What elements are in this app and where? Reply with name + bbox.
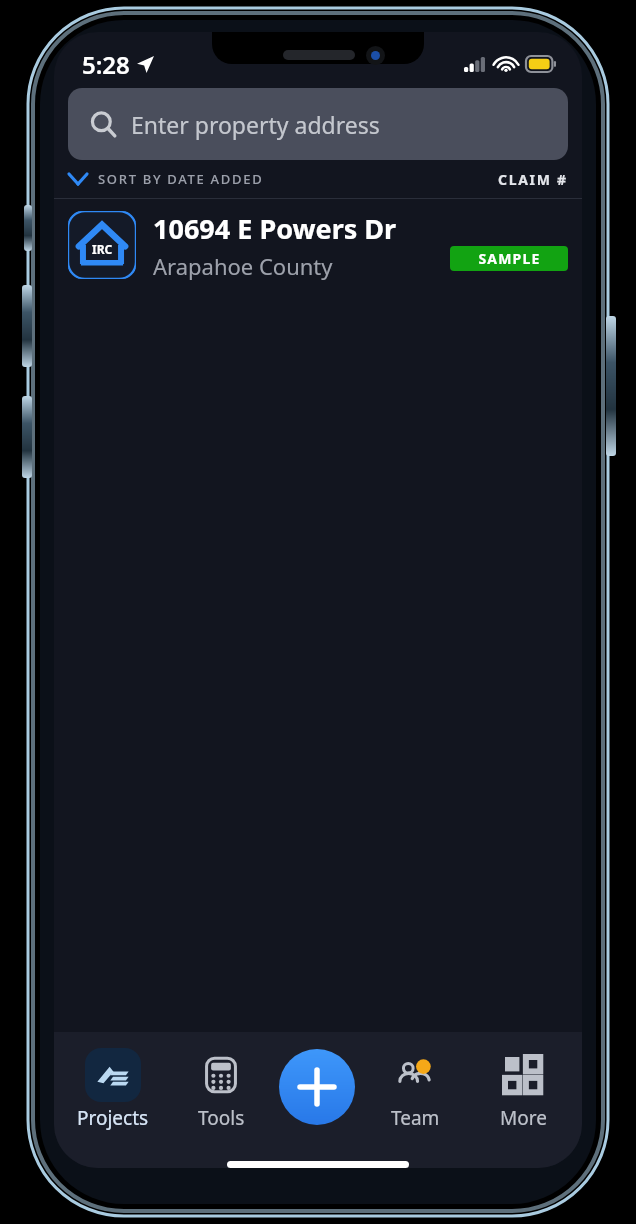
button[interactable]: Team xyxy=(367,1044,463,1135)
staticText: Projects xyxy=(77,1105,149,1131)
staticText: SORT BY DATE ADDED xyxy=(98,170,264,188)
button[interactable]: CLAIM # xyxy=(498,170,568,189)
staticText: Team xyxy=(391,1105,440,1131)
staticText: 10694 E Powers Dr xyxy=(153,210,397,247)
staticText: More xyxy=(500,1105,547,1131)
button[interactable]: Enter property address xyxy=(68,88,568,160)
button[interactable]: SORT BY DATE ADDED xyxy=(68,170,272,188)
staticText: Arapahoe County xyxy=(153,251,333,281)
button[interactable]: Tools xyxy=(173,1044,269,1135)
staticText: IRC xyxy=(92,241,113,257)
staticText: 5:28 xyxy=(82,48,130,81)
staticText: CLAIM # xyxy=(498,170,568,189)
button[interactable]: Add xyxy=(279,1049,355,1125)
button[interactable]: IRC xyxy=(54,199,582,291)
staticText: Enter property address xyxy=(131,109,380,140)
staticText: SAMPLE xyxy=(478,249,541,268)
staticText: Tools xyxy=(198,1105,245,1131)
button[interactable]: More xyxy=(475,1044,571,1135)
button[interactable]: Projects xyxy=(65,1044,161,1135)
